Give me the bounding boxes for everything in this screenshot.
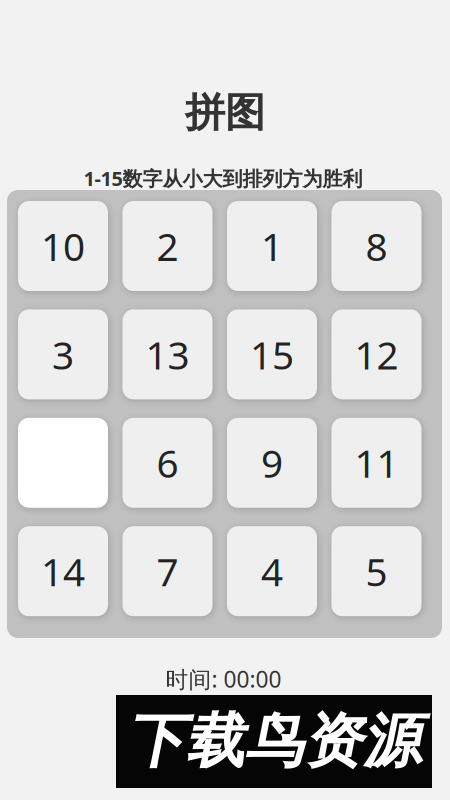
button[interactable]: 14	[18, 526, 108, 616]
button[interactable]: 8	[331, 201, 421, 291]
button[interactable]: 10	[18, 201, 108, 291]
staticText: 11	[354, 437, 398, 488]
staticText: 15	[250, 329, 294, 380]
staticText: 时间: 00:00	[165, 664, 281, 694]
staticText: 6	[156, 437, 178, 488]
staticText: 10	[41, 220, 85, 272]
staticText: 拼图	[185, 88, 265, 137]
staticText: 13	[145, 329, 189, 380]
staticText: 1	[261, 220, 283, 272]
button[interactable]: 12	[331, 309, 421, 399]
staticText: 4	[261, 545, 283, 597]
staticText: 1-15数字从小大到排列方为胜利	[83, 165, 362, 192]
button[interactable]: 2	[122, 201, 212, 291]
staticText: 7	[156, 545, 178, 597]
button[interactable]: 11	[331, 418, 421, 508]
button[interactable]: 5	[331, 526, 421, 616]
button[interactable]: 3	[18, 309, 108, 399]
staticText: 3	[52, 329, 74, 380]
staticText: 2	[156, 220, 178, 272]
staticText: 9	[261, 437, 283, 488]
button[interactable]: 9	[227, 418, 317, 508]
staticText: 12	[354, 329, 398, 380]
staticText: 8	[365, 220, 387, 272]
button[interactable]: 15	[227, 309, 317, 399]
button[interactable]: Empty slot	[18, 418, 108, 508]
button[interactable]: 13	[122, 309, 212, 399]
button[interactable]: 1	[227, 201, 317, 291]
staticText: 下载鸟资源	[126, 705, 421, 778]
button[interactable]: 7	[122, 526, 212, 616]
staticText: 5	[365, 545, 387, 597]
button[interactable]: 4	[227, 526, 317, 616]
button[interactable]: 6	[122, 418, 212, 508]
staticText: 14	[41, 545, 85, 597]
